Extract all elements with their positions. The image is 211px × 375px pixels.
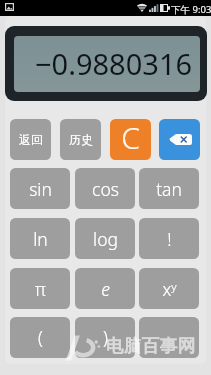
staticText: π	[35, 277, 46, 301]
staticText: tan	[156, 177, 182, 201]
button[interactable]: 历史	[60, 119, 101, 160]
staticText: (	[38, 325, 43, 349]
button[interactable]: 返回	[10, 119, 51, 160]
button[interactable]: C	[110, 119, 151, 160]
button[interactable]: sin	[10, 168, 70, 209]
button[interactable]: log	[75, 218, 135, 259]
button[interactable]: Delete	[159, 119, 200, 160]
button[interactable]: xʸ	[139, 268, 199, 309]
button[interactable]: !	[139, 218, 199, 259]
staticText: 电脑百事网	[106, 335, 196, 357]
staticText: sin	[29, 177, 52, 201]
button[interactable]: (	[10, 317, 70, 358]
staticText: )	[103, 325, 108, 349]
button[interactable]: e	[75, 268, 135, 309]
staticText: !	[167, 227, 172, 251]
staticText: −0.9880316	[35, 44, 193, 83]
button[interactable]: π	[10, 268, 70, 309]
button[interactable]: Delete	[139, 317, 199, 358]
staticText: ln	[33, 227, 48, 251]
staticText: 下午 9:03	[171, 3, 211, 16]
staticText: 返回	[19, 132, 43, 147]
staticText: xʸ	[162, 277, 177, 301]
button[interactable]: )	[75, 317, 135, 358]
button[interactable]: cos	[75, 168, 135, 209]
staticText: 历史	[69, 132, 93, 147]
staticText: e	[101, 277, 110, 301]
button[interactable]: tan	[139, 168, 199, 209]
staticText: C	[121, 119, 140, 158]
button[interactable]: ln	[10, 218, 70, 259]
staticText: cos	[92, 177, 119, 201]
staticText: log	[93, 227, 118, 251]
